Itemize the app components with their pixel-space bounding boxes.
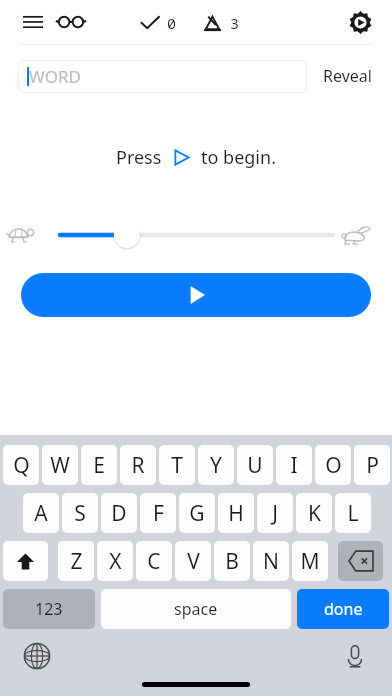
button[interactable]	[0, 220, 392, 250]
button[interactable]: Y	[198, 445, 234, 485]
button[interactable]: done	[297, 589, 389, 629]
staticText: V	[187, 547, 200, 576]
staticText: O	[325, 451, 342, 480]
staticText: Press	[116, 145, 162, 170]
button[interactable]: J	[257, 493, 293, 533]
staticText: J	[272, 499, 278, 528]
button[interactable]: Menu	[16, 5, 50, 39]
button[interactable]: P	[354, 445, 390, 485]
button[interactable]: K	[296, 493, 332, 533]
button[interactable]: A	[23, 493, 59, 533]
staticText: 3	[230, 13, 240, 33]
staticText: S	[74, 499, 86, 528]
button[interactable]: Play	[21, 273, 371, 317]
button[interactable]: N	[253, 541, 289, 581]
button[interactable]: V	[175, 541, 211, 581]
staticText: to begin.	[201, 145, 276, 170]
button[interactable]: Z	[58, 541, 94, 581]
staticText: T	[171, 451, 183, 480]
button[interactable]: H	[218, 493, 254, 533]
button[interactable]: Q	[3, 445, 39, 485]
button[interactable]: S	[62, 493, 98, 533]
staticText: X	[109, 547, 122, 576]
button[interactable]: X	[97, 541, 133, 581]
button[interactable]: Change keyboard language	[22, 641, 52, 671]
button[interactable]: 0	[136, 9, 181, 37]
staticText: G	[189, 499, 205, 528]
staticText: E	[93, 451, 105, 480]
staticText: K	[308, 499, 321, 528]
button[interactable]: G	[179, 493, 215, 533]
button[interactable]: W	[42, 445, 78, 485]
staticText: P	[366, 451, 379, 480]
staticText: M	[300, 547, 320, 576]
staticText: N	[263, 547, 279, 576]
staticText: U	[247, 451, 263, 480]
button[interactable]: B	[214, 541, 250, 581]
button[interactable]: R	[120, 445, 156, 485]
button[interactable]: E	[81, 445, 117, 485]
staticText: A	[34, 499, 48, 528]
staticText: R	[131, 451, 145, 480]
staticText: W	[50, 451, 70, 480]
staticText: B	[225, 547, 239, 576]
button[interactable]: L	[335, 493, 371, 533]
staticText: space	[174, 598, 218, 620]
staticText: Q	[13, 451, 30, 480]
staticText: done	[324, 598, 363, 620]
staticText: D	[111, 499, 127, 528]
button[interactable]: C	[136, 541, 172, 581]
button[interactable]: I	[276, 445, 312, 485]
staticText: Z	[70, 547, 83, 576]
staticText: I	[290, 451, 298, 480]
staticText: Y	[210, 451, 222, 480]
staticText: L	[347, 499, 359, 528]
staticText: 123	[35, 598, 63, 620]
button[interactable]: WORD	[18, 60, 307, 93]
button[interactable]: Voice input	[340, 641, 370, 671]
button[interactable]: Backspace	[338, 541, 383, 581]
staticText: H	[228, 499, 244, 528]
button[interactable]: M	[292, 541, 328, 581]
button[interactable]: Shift	[3, 541, 48, 581]
button[interactable]: U	[237, 445, 273, 485]
button[interactable]: space	[101, 589, 291, 629]
button[interactable]: 123	[3, 589, 95, 629]
staticText: WORD	[29, 65, 81, 88]
staticText: Reveal	[323, 65, 372, 87]
button[interactable]: 3	[198, 8, 244, 37]
staticText: C	[147, 547, 161, 576]
button[interactable]: Reveal	[319, 59, 376, 93]
staticText: 0	[167, 13, 177, 33]
staticText: F	[153, 499, 164, 528]
button[interactable]: F	[140, 493, 176, 533]
button[interactable]: Settings	[342, 4, 378, 40]
button[interactable]: T	[159, 445, 195, 485]
button[interactable]: Reading mode	[52, 3, 90, 41]
button[interactable]: O	[315, 445, 351, 485]
button[interactable]: D	[101, 493, 137, 533]
